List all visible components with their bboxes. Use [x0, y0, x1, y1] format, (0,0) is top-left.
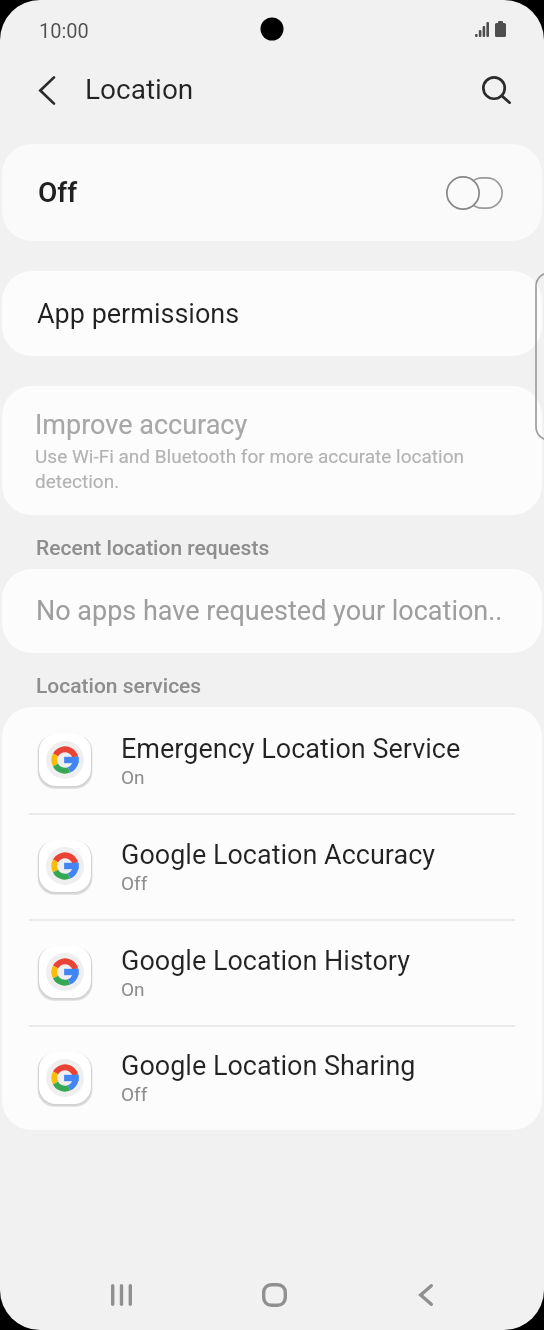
button[interactable]: Recent apps	[83, 1257, 159, 1330]
button: Location services	[36, 674, 202, 699]
staticText: Google Location Sharing	[121, 1050, 416, 1082]
button[interactable]: Improve accuracy	[2, 386, 542, 515]
staticText: No apps have requested your location..	[36, 595, 503, 627]
staticText: Google Location Accuracy	[121, 839, 436, 871]
button[interactable]: Google Location Accuracy	[2, 813, 542, 919]
staticText: Off	[121, 1083, 148, 1105]
button[interactable]: Location on or off	[446, 176, 503, 210]
button[interactable]: Home	[236, 1257, 312, 1330]
button[interactable]: Back	[388, 1257, 464, 1330]
staticText: Location services	[36, 674, 202, 699]
staticText: Location	[85, 73, 194, 106]
button[interactable]: Google Location History	[2, 919, 542, 1025]
button[interactable]: No apps have requested your location..	[2, 569, 542, 653]
staticText: Recent location requests	[36, 536, 270, 561]
staticText: Use Wi-Fi and Bluetooth for more accurat…	[35, 445, 497, 492]
button[interactable]: Off	[2, 144, 542, 241]
button[interactable]: Emergency Location Service	[2, 707, 542, 1130]
staticText: Emergency Location Service	[121, 733, 461, 765]
button[interactable]: Google Location Sharing	[2, 1025, 542, 1130]
button: Recent location requests	[36, 536, 270, 561]
staticText: Off	[38, 176, 78, 209]
staticText: Google Location History	[121, 945, 410, 977]
staticText: App permissions	[37, 298, 240, 330]
staticText: 10:00	[39, 19, 89, 42]
staticText: Off	[121, 872, 148, 894]
button[interactable]: App permissions	[2, 271, 542, 356]
button[interactable]: Navigate up	[21, 64, 73, 116]
staticText: On	[121, 978, 145, 1000]
button[interactable]: Emergency Location Service	[2, 707, 542, 813]
staticText: Improve accuracy	[35, 409, 248, 441]
staticText: On	[121, 766, 145, 788]
button[interactable]: Search	[470, 64, 522, 116]
